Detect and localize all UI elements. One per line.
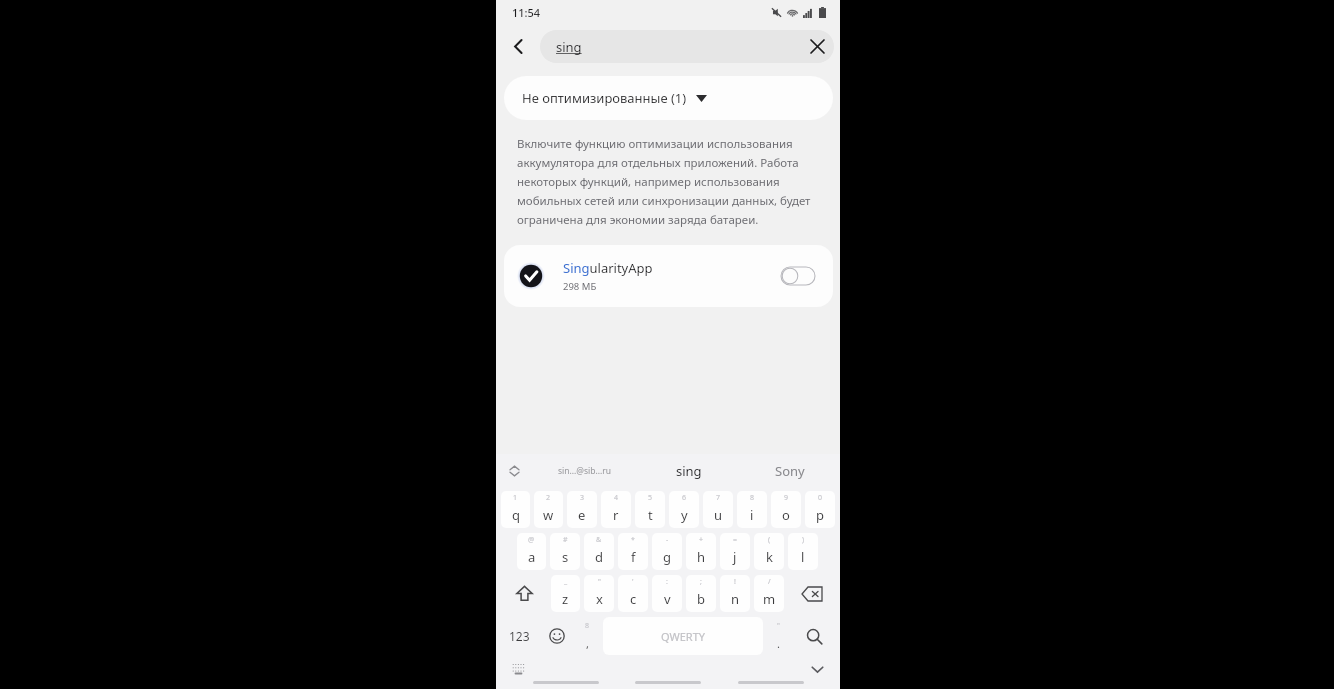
button[interactable]: Navigation [738,681,804,684]
staticText: 8 [750,493,755,503]
staticText: n [731,590,740,608]
button[interactable]: Expand suggestions [496,454,532,487]
button[interactable]: Clear [801,30,834,63]
button[interactable]: ' [618,575,648,612]
staticText: 3 [580,493,585,503]
button[interactable]: Emoji [539,617,574,655]
button[interactable]: 123 [499,617,539,655]
button[interactable]: 8 [574,617,601,655]
staticText: z [562,590,569,608]
button[interactable]: " [584,575,614,612]
staticText: p [816,506,824,524]
button[interactable]: sing [540,30,834,63]
staticText: 0 [818,493,823,503]
button[interactable]: / [754,575,784,612]
staticText: ( [768,535,771,545]
staticText: Sony [775,462,805,480]
staticText: , [586,636,589,651]
staticText: 123 [509,628,530,644]
button[interactable]: _ [551,575,580,612]
button[interactable]: = [720,533,750,570]
staticText: . [777,636,780,651]
button[interactable]: 0 [805,491,835,528]
button[interactable]: @ [517,533,546,570]
staticText: sin...@sib...ru [558,465,612,477]
button[interactable]: 1 [501,491,530,528]
staticText: 11:54 [512,5,541,20]
staticText: ) [802,535,805,545]
staticText: 5 [648,493,653,503]
button[interactable]: 2 [534,491,563,528]
staticText: + [699,535,704,545]
staticText: 6 [682,493,687,503]
button[interactable]: 6 [669,491,699,528]
staticText: o [782,506,790,524]
button[interactable]: + [686,533,716,570]
staticText: v [664,590,671,608]
staticText: 1 [513,493,518,503]
button[interactable]: : [652,575,682,612]
staticText: t [648,506,653,524]
staticText: b [697,590,705,608]
staticText: " [598,577,601,587]
button[interactable]: Back [496,24,540,68]
staticText: : [666,577,668,587]
button[interactable]: Shift [499,575,549,612]
staticText: 2 [546,493,551,503]
button[interactable]: Hide keyboard [808,660,826,678]
button[interactable]: sing [638,454,739,487]
staticText: y [681,506,688,524]
button[interactable]: ; [686,575,716,612]
button[interactable]: - [652,533,682,570]
staticText: j [733,548,737,566]
staticText: QWERTY [661,629,706,644]
staticText: / [768,577,771,587]
button[interactable]: 4 [601,491,631,528]
button[interactable]: 7 [703,491,733,528]
button[interactable]: 3 [567,491,597,528]
button[interactable]: Navigation [533,681,599,684]
staticText: h [697,548,706,566]
button[interactable]: * [618,533,648,570]
staticText: ; [700,577,702,587]
button[interactable]: " [765,617,792,655]
button[interactable]: & [584,533,614,570]
staticText: * [631,535,635,545]
staticText: f [631,548,636,566]
button[interactable]: Sony [739,454,840,487]
button[interactable]: 9 [771,491,801,528]
button[interactable]: # [550,533,580,570]
button[interactable]: Navigation [635,681,701,684]
staticText: " [777,621,780,631]
button[interactable]: sin...@sib...ru [532,454,638,487]
staticText: ! [734,577,736,587]
staticText: c [630,590,637,608]
button[interactable]: 8 [737,491,767,528]
button[interactable]: 5 [635,491,665,528]
staticText: sing [676,462,702,480]
staticText: l [801,548,805,566]
staticText: @ [528,535,535,545]
staticText: s [562,548,569,566]
button[interactable]: Не оптимизированные (1) [504,76,833,120]
staticText: g [663,548,671,566]
staticText: Включите функцию оптимизации использован… [517,136,816,227]
button[interactable]: Backspace [786,575,837,612]
button[interactable]: QWERTY [603,617,763,655]
staticText: w [543,506,554,524]
staticText: Не оптимизированные (1) [522,89,687,107]
staticText: 4 [614,493,619,503]
button[interactable]: Toggle optimization [776,258,820,294]
staticText: u [714,506,723,524]
button[interactable]: SingularityApp [504,245,833,307]
button[interactable]: Keyboard layout [510,661,526,677]
button[interactable]: ! [720,575,750,612]
staticText: m [763,590,776,608]
staticText: a [528,548,536,566]
staticText: & [596,535,602,545]
staticText: 8 [585,621,590,631]
button[interactable]: Search [792,617,837,655]
button[interactable]: ( [754,533,784,570]
button[interactable]: ) [788,533,818,570]
staticText: sing [556,38,582,56]
